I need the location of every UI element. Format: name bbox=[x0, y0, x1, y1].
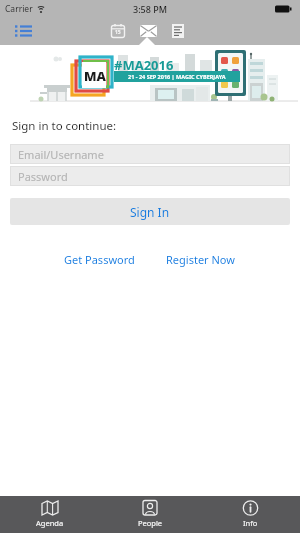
button[interactable]: 15 bbox=[111, 24, 125, 38]
button[interactable]: Get Password bbox=[64, 252, 135, 267]
button[interactable] bbox=[15, 25, 32, 37]
staticText: Email/Username bbox=[18, 147, 104, 162]
staticText: Sign in to continue: bbox=[12, 118, 117, 134]
staticText: Carrier bbox=[5, 3, 33, 15]
button[interactable]: Register Now bbox=[166, 252, 235, 267]
staticText: MA bbox=[84, 67, 107, 85]
staticText: Register Now bbox=[166, 252, 235, 267]
button[interactable]: People bbox=[100, 496, 200, 533]
button[interactable]: Info bbox=[200, 496, 300, 533]
button[interactable]: Email/Username bbox=[10, 144, 290, 164]
button[interactable]: MA bbox=[0, 45, 300, 104]
button[interactable] bbox=[140, 25, 157, 37]
button[interactable]: Sign In bbox=[10, 198, 290, 225]
staticText: Agenda bbox=[36, 518, 64, 528]
staticText: Sign In bbox=[130, 204, 170, 220]
staticText: Password bbox=[18, 169, 68, 184]
staticText: People bbox=[138, 518, 163, 528]
button[interactable] bbox=[172, 24, 184, 38]
staticText: #MA2016 bbox=[114, 56, 174, 74]
staticText: 21 - 24 SEP 2016 | MAGIC CYBERJAYA bbox=[128, 73, 226, 80]
staticText: 3:58 PM bbox=[133, 3, 167, 15]
button[interactable]: Password bbox=[10, 166, 290, 186]
staticText: Get Password bbox=[64, 252, 135, 267]
staticText: Info bbox=[243, 518, 258, 528]
staticText: 15 bbox=[115, 29, 121, 36]
button[interactable]: Agenda bbox=[0, 496, 100, 533]
